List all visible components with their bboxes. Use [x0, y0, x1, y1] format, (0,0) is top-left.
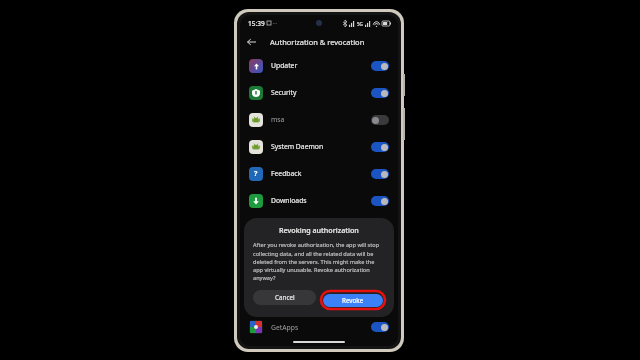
- staticText: Authorization & revocation: [270, 37, 365, 47]
- staticText: Feedback: [271, 169, 302, 178]
- button[interactable]: Cancel: [253, 290, 316, 305]
- button[interactable]: System apps updater: [240, 214, 398, 241]
- button[interactable]: Toggle on: [371, 88, 389, 98]
- staticText: Downloads: [271, 196, 307, 205]
- staticText: ···: [273, 20, 278, 27]
- button[interactable]: Downloads: [240, 187, 398, 214]
- button[interactable]: Toggle off: [371, 115, 389, 125]
- button[interactable]: Toggle on: [371, 142, 389, 152]
- staticText: After you revoke authorization, the app …: [253, 241, 385, 281]
- button[interactable]: msa: [240, 106, 398, 133]
- staticText: System apps updater: [271, 223, 339, 232]
- staticText: msa: [271, 115, 285, 124]
- staticText: 5G: [357, 21, 363, 27]
- button[interactable]: Revoke: [323, 294, 383, 307]
- button[interactable]: Updater: [240, 52, 398, 79]
- button[interactable]: System Daemon: [240, 133, 398, 160]
- staticText: Cancel: [275, 293, 295, 302]
- staticText: Revoking authorization: [279, 225, 359, 235]
- button[interactable]: ?: [240, 160, 398, 187]
- staticText: Security: [271, 88, 297, 97]
- button[interactable]: GetApps: [240, 317, 398, 337]
- button[interactable]: Back: [240, 31, 262, 52]
- button[interactable]: Toggle on: [371, 61, 389, 71]
- staticText: ?: [254, 169, 258, 179]
- button[interactable]: Security: [240, 79, 398, 106]
- staticText: System Daemon: [271, 142, 324, 151]
- staticText: GetApps: [271, 323, 299, 332]
- button[interactable]: Toggle on: [371, 322, 389, 332]
- staticText: Revoke: [342, 296, 364, 305]
- staticText: Updater: [271, 61, 298, 70]
- button[interactable]: Toggle on: [371, 169, 389, 179]
- button[interactable]: Toggle on: [371, 196, 389, 206]
- staticText: 15:39: [248, 19, 265, 28]
